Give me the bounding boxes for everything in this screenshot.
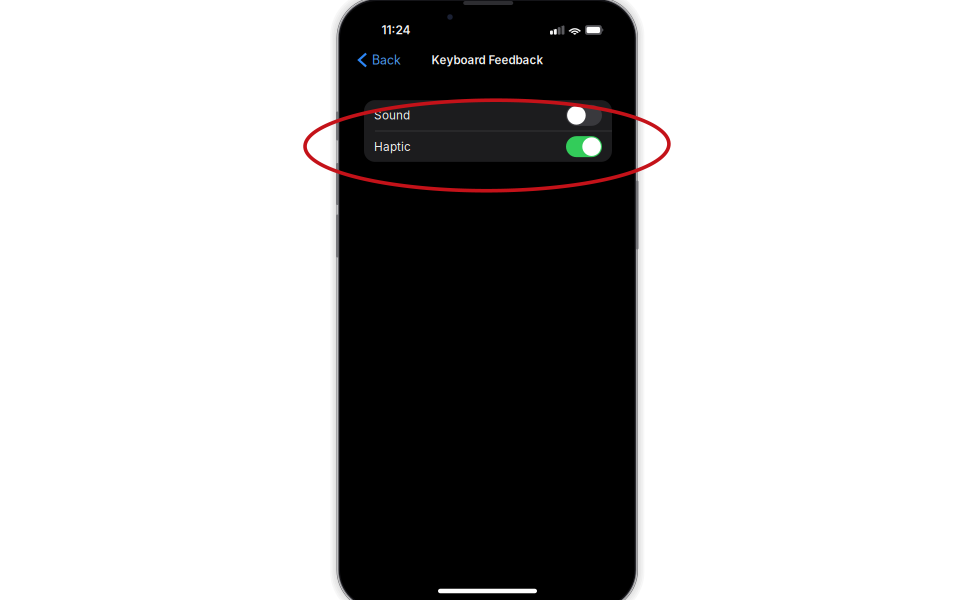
staticText: Sound [374,108,410,122]
button[interactable]: Sound [364,100,612,131]
button[interactable]: Haptic toggle, on [566,136,602,157]
button[interactable]: Sound toggle, off [566,105,602,126]
staticText: Haptic [374,140,411,154]
staticText: Back [372,52,401,67]
staticText: Keyboard Feedback [431,53,543,67]
staticText: 11:24 [381,23,410,37]
button[interactable]: Back [354,46,406,73]
button[interactable]: Haptic [364,131,612,162]
